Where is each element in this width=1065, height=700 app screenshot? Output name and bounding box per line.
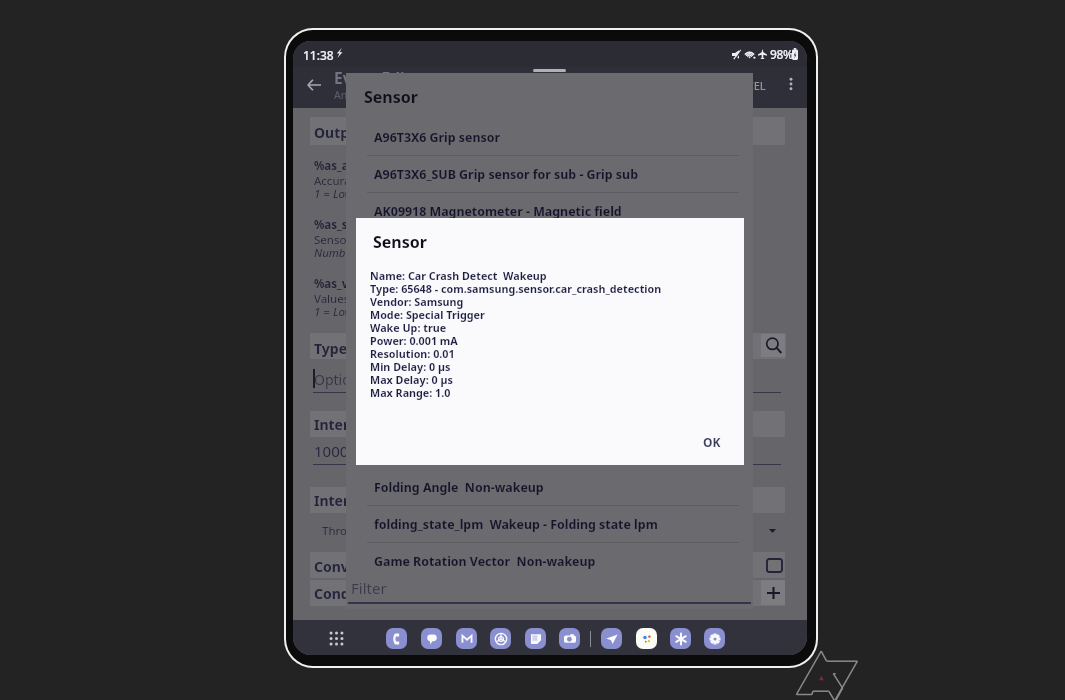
button[interactable]: folding_state_lpm Wakeup - Folding state… xyxy=(346,506,753,542)
button[interactable]: Expand xyxy=(759,518,785,544)
staticText: %as_values xyxy=(314,276,379,292)
button[interactable]: Folding Angle Non-wakeup xyxy=(346,469,753,505)
staticText: Event Edit xyxy=(334,67,412,88)
button[interactable]: Assistant xyxy=(636,628,657,649)
staticText: Interval xyxy=(314,415,370,434)
staticText: 1000 xyxy=(314,441,349,461)
staticText: Accuracy xyxy=(314,173,362,189)
staticText: Condition xyxy=(314,584,382,603)
staticText: Number xyxy=(314,245,356,261)
staticText: An event xyxy=(334,88,378,102)
button[interactable]: Chrome xyxy=(490,628,511,649)
staticText: Folding Angle Non-wakeup xyxy=(374,479,544,496)
staticText: folding_state_lpm Wakeup - Folding state… xyxy=(374,516,658,533)
staticText: Filter xyxy=(351,578,387,598)
staticText: Interval xyxy=(314,491,370,510)
button[interactable]: Search xyxy=(761,334,786,357)
staticText: Throttle xyxy=(322,523,365,539)
button[interactable]: All apps xyxy=(326,628,347,649)
button[interactable]: Game Rotation Vector Non-wakeup xyxy=(346,543,753,579)
staticText: 1 = Low xyxy=(314,304,353,320)
staticText: Sensor xyxy=(373,231,427,253)
button[interactable]: OK xyxy=(695,429,729,455)
button[interactable]: Add xyxy=(761,580,785,605)
button[interactable]: More options xyxy=(778,71,804,97)
button[interactable]: A96T3X6 Grip sensor xyxy=(346,119,753,155)
staticText: Sensor xyxy=(364,86,418,108)
staticText: 1 = Low xyxy=(314,186,353,202)
staticText: OK xyxy=(703,434,721,450)
button[interactable]: Notes xyxy=(525,628,546,649)
staticText: Output xyxy=(314,123,365,142)
button[interactable]: Phone xyxy=(386,628,407,649)
button[interactable]: Snowflake xyxy=(670,628,691,649)
staticText: %as_accuracy xyxy=(314,158,393,174)
button[interactable]: Toggle xyxy=(767,559,782,572)
staticText: Values xyxy=(314,291,350,307)
staticText: 98% xyxy=(770,46,793,62)
button[interactable]: AK09918 Magnetometer - Magnetic field xyxy=(346,193,753,229)
staticText: Type xyxy=(314,339,347,358)
staticText: Convert xyxy=(314,557,370,576)
staticText: 11:38 xyxy=(303,47,334,63)
staticText: A96T3X6_SUB Grip sensor for sub - Grip s… xyxy=(374,166,638,183)
staticText: Option xyxy=(314,370,360,389)
button[interactable]: Camera xyxy=(559,628,580,649)
staticText: A96T3X6 Grip sensor xyxy=(374,129,501,146)
button[interactable]: CANCEL xyxy=(724,78,766,93)
button[interactable]: Settings xyxy=(704,628,725,649)
staticText: Game Rotation Vector Non-wakeup xyxy=(374,553,596,570)
button[interactable]: Gmail xyxy=(456,628,477,649)
button[interactable]: Messages xyxy=(421,628,442,649)
staticText: Name: Car Crash Detect Wakeup Type: 6564… xyxy=(370,269,662,401)
button[interactable]: Telegram xyxy=(601,628,622,649)
staticText: %as_sensor xyxy=(314,217,380,233)
staticText: AK09918 Magnetometer - Magnetic field xyxy=(374,203,622,220)
button[interactable]: A96T3X6_SUB Grip sensor for sub - Grip s… xyxy=(346,156,753,192)
staticText: Sensor xyxy=(314,232,352,248)
button[interactable]: Back xyxy=(299,70,329,100)
